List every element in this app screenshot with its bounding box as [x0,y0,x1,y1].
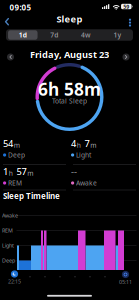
staticText: REM [2,227,13,234]
button[interactable]: 1d [7,29,39,41]
staticText: Deep [8,151,25,159]
staticText: Awake [2,212,18,219]
button[interactable]: 1y [102,29,133,41]
staticText: REM [8,179,22,187]
staticText: 05:11 [119,278,132,286]
staticText: Friday, August 23 [30,48,109,61]
staticText: Total Sleep [52,97,87,105]
staticText: 6h 58m [38,77,101,100]
staticText: Sleep [56,13,82,25]
staticText: 57 [16,165,26,178]
staticText: 1y [114,31,122,39]
staticText: 22:15 [8,278,21,285]
staticText: m [14,141,20,150]
staticText: h [77,141,81,150]
staticText: Light [2,242,14,249]
button[interactable]: Back [2,14,14,28]
button[interactable]: 7d [38,29,70,41]
staticText: 7 [84,137,89,150]
button[interactable]: More [124,15,136,29]
staticText: Deep [2,257,15,264]
staticText: 4w [81,31,91,39]
staticText: Light [76,151,91,159]
staticText: 54 [3,137,13,150]
staticText: -- [71,165,77,178]
staticText: h [9,169,13,178]
staticText: m [27,169,33,178]
button[interactable]: Next day [121,52,130,61]
staticText: Sleep Timeline [3,191,60,201]
staticText: 4 [71,137,76,150]
staticText: m [90,141,96,150]
staticText: 59 [123,3,129,10]
staticText: 1 [3,165,8,178]
button[interactable]: 4w [70,29,102,41]
staticText: Awake [76,179,97,187]
staticText: 09:05 [9,2,31,13]
staticText: 7d [50,31,58,39]
staticText: 1d [19,31,27,39]
button[interactable]: Previous day [6,52,15,61]
